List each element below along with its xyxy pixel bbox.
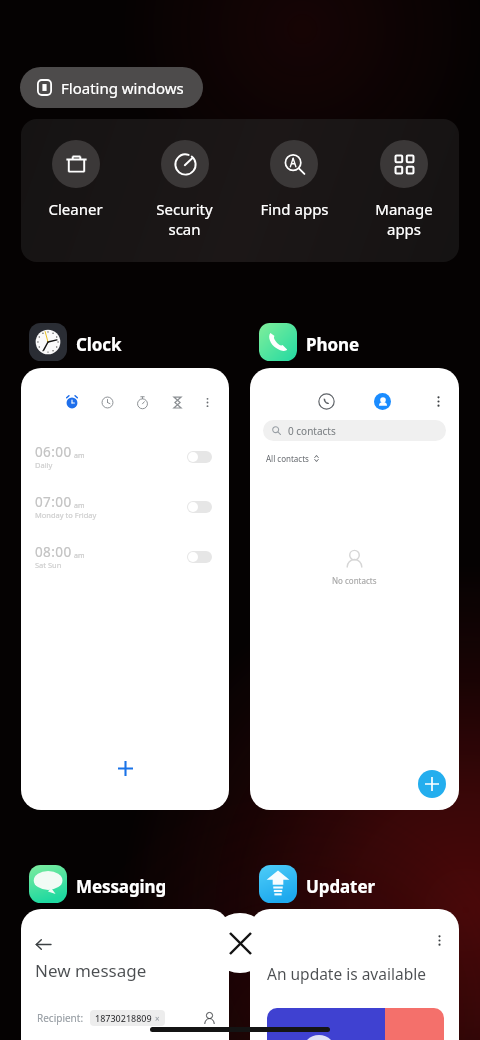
staticText: am xyxy=(74,551,85,561)
staticText: All contacts xyxy=(266,453,309,464)
button[interactable]: Cleaner xyxy=(21,119,130,262)
button[interactable]: Add contact xyxy=(418,770,446,798)
button[interactable]: Updater xyxy=(259,865,375,903)
button[interactable]: Manage apps xyxy=(349,119,459,262)
button[interactable]: Phone xyxy=(259,323,359,361)
button[interactable]: Floating windows xyxy=(20,67,203,108)
button[interactable]: 07:00 xyxy=(35,489,212,525)
button[interactable]: Add alarm xyxy=(109,752,142,785)
button[interactable]: World clock xyxy=(96,391,118,413)
staticText: am xyxy=(74,451,85,461)
staticText: No contacts xyxy=(332,575,377,586)
button[interactable] xyxy=(187,551,212,563)
staticText: Daily xyxy=(35,460,53,470)
button[interactable]: Security scan xyxy=(130,119,239,262)
staticText: 06:00 xyxy=(35,443,72,461)
button[interactable]: 08:00 xyxy=(35,539,212,575)
button[interactable]: 0 contacts xyxy=(263,420,446,441)
button[interactable]: Close all xyxy=(210,913,270,973)
staticText: Messaging xyxy=(76,875,167,898)
button[interactable]: Clock xyxy=(29,323,122,361)
button[interactable]: All contacts xyxy=(266,453,320,464)
button[interactable]: More options xyxy=(197,392,217,412)
button[interactable]: Back xyxy=(35,936,52,953)
staticText: Floating windows xyxy=(61,78,184,98)
button[interactable]: Find apps xyxy=(239,119,349,262)
staticText: Updater xyxy=(306,875,375,898)
button[interactable]: More options xyxy=(250,909,459,1040)
staticText: Recipient: xyxy=(37,1011,84,1025)
button[interactable]: Contacts xyxy=(250,368,459,810)
staticText: Cleaner xyxy=(48,199,103,219)
staticText: Monday to Friday xyxy=(35,510,97,520)
staticText: 18730218809 xyxy=(95,1012,152,1024)
button[interactable]: Alarm xyxy=(21,368,229,810)
staticText: 0 contacts xyxy=(288,424,336,438)
staticText: × xyxy=(155,1013,160,1024)
staticText: Sat Sun xyxy=(35,560,62,570)
button[interactable] xyxy=(187,501,212,513)
button[interactable] xyxy=(187,451,212,463)
staticText: An update is available xyxy=(267,963,426,984)
staticText: 07:00 xyxy=(35,493,72,511)
staticText: am xyxy=(74,501,85,511)
staticText: Find apps xyxy=(260,199,329,219)
button[interactable]: Messaging xyxy=(29,865,167,903)
button[interactable]: Stopwatch xyxy=(131,391,153,413)
button[interactable]: 18730218809 xyxy=(90,1010,165,1026)
button[interactable]: 06:00 xyxy=(35,439,212,475)
staticText: New message xyxy=(35,959,147,982)
button[interactable]: More options xyxy=(432,933,447,948)
staticText: Manage apps xyxy=(375,199,433,239)
button[interactable]: Alarm xyxy=(61,391,83,413)
staticText: 08:00 xyxy=(35,543,72,561)
button[interactable]: Back xyxy=(21,909,229,1040)
staticText: Phone xyxy=(306,333,359,356)
button[interactable]: Timer xyxy=(166,391,188,413)
button[interactable]: Contacts xyxy=(374,393,391,410)
staticText: Clock xyxy=(76,333,122,356)
staticText: Security scan xyxy=(156,199,213,239)
